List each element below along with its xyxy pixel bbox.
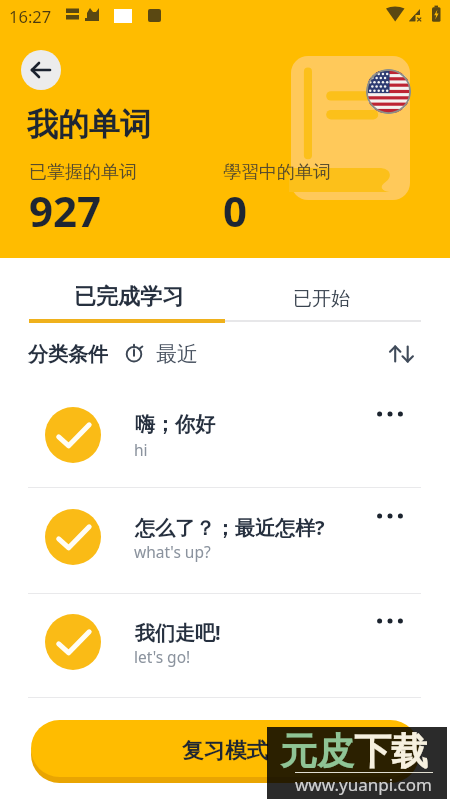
button[interactable]: 已完成学习 bbox=[0, 258, 225, 324]
staticText: 下载 bbox=[354, 728, 428, 775]
staticText: 已掌握的单词 bbox=[29, 161, 137, 184]
staticText: hi bbox=[134, 439, 148, 460]
staticText: 怎么了？；最近怎样? bbox=[135, 514, 325, 541]
staticText: 學習中的单词 bbox=[223, 161, 331, 184]
staticText: 嗨；你好 bbox=[135, 412, 215, 437]
button[interactable]: More options bbox=[372, 498, 408, 534]
staticText: 16:27 bbox=[9, 5, 52, 27]
staticText: 复习模式 bbox=[182, 737, 268, 764]
staticText: what's up? bbox=[134, 541, 211, 562]
button[interactable]: More options bbox=[372, 603, 408, 639]
staticText: 最近 bbox=[156, 341, 198, 367]
button[interactable]: Back bbox=[21, 50, 61, 90]
staticText: 元皮 bbox=[280, 728, 354, 775]
staticText: 已完成学习 bbox=[74, 283, 184, 311]
button[interactable]: More options bbox=[372, 396, 408, 432]
staticText: 927 bbox=[29, 182, 102, 239]
button[interactable]: 已开始 bbox=[225, 258, 450, 324]
staticText: www.yuanpi.com bbox=[295, 773, 432, 796]
staticText: let's go! bbox=[134, 646, 191, 667]
staticText: 我的单词 bbox=[27, 105, 151, 144]
staticText: 0 bbox=[223, 182, 248, 239]
staticText: 已开始 bbox=[293, 287, 350, 311]
button[interactable]: 我们走吧! bbox=[0, 591, 450, 693]
button[interactable]: 嗨；你好 bbox=[0, 384, 450, 486]
button[interactable]: 复习模式 bbox=[31, 720, 419, 777]
button[interactable]: 怎么了？；最近怎样? bbox=[0, 486, 450, 588]
button[interactable]: Sort order bbox=[384, 335, 420, 371]
staticText: 分类条件 bbox=[28, 342, 108, 367]
staticText: 我们走吧! bbox=[135, 619, 221, 646]
